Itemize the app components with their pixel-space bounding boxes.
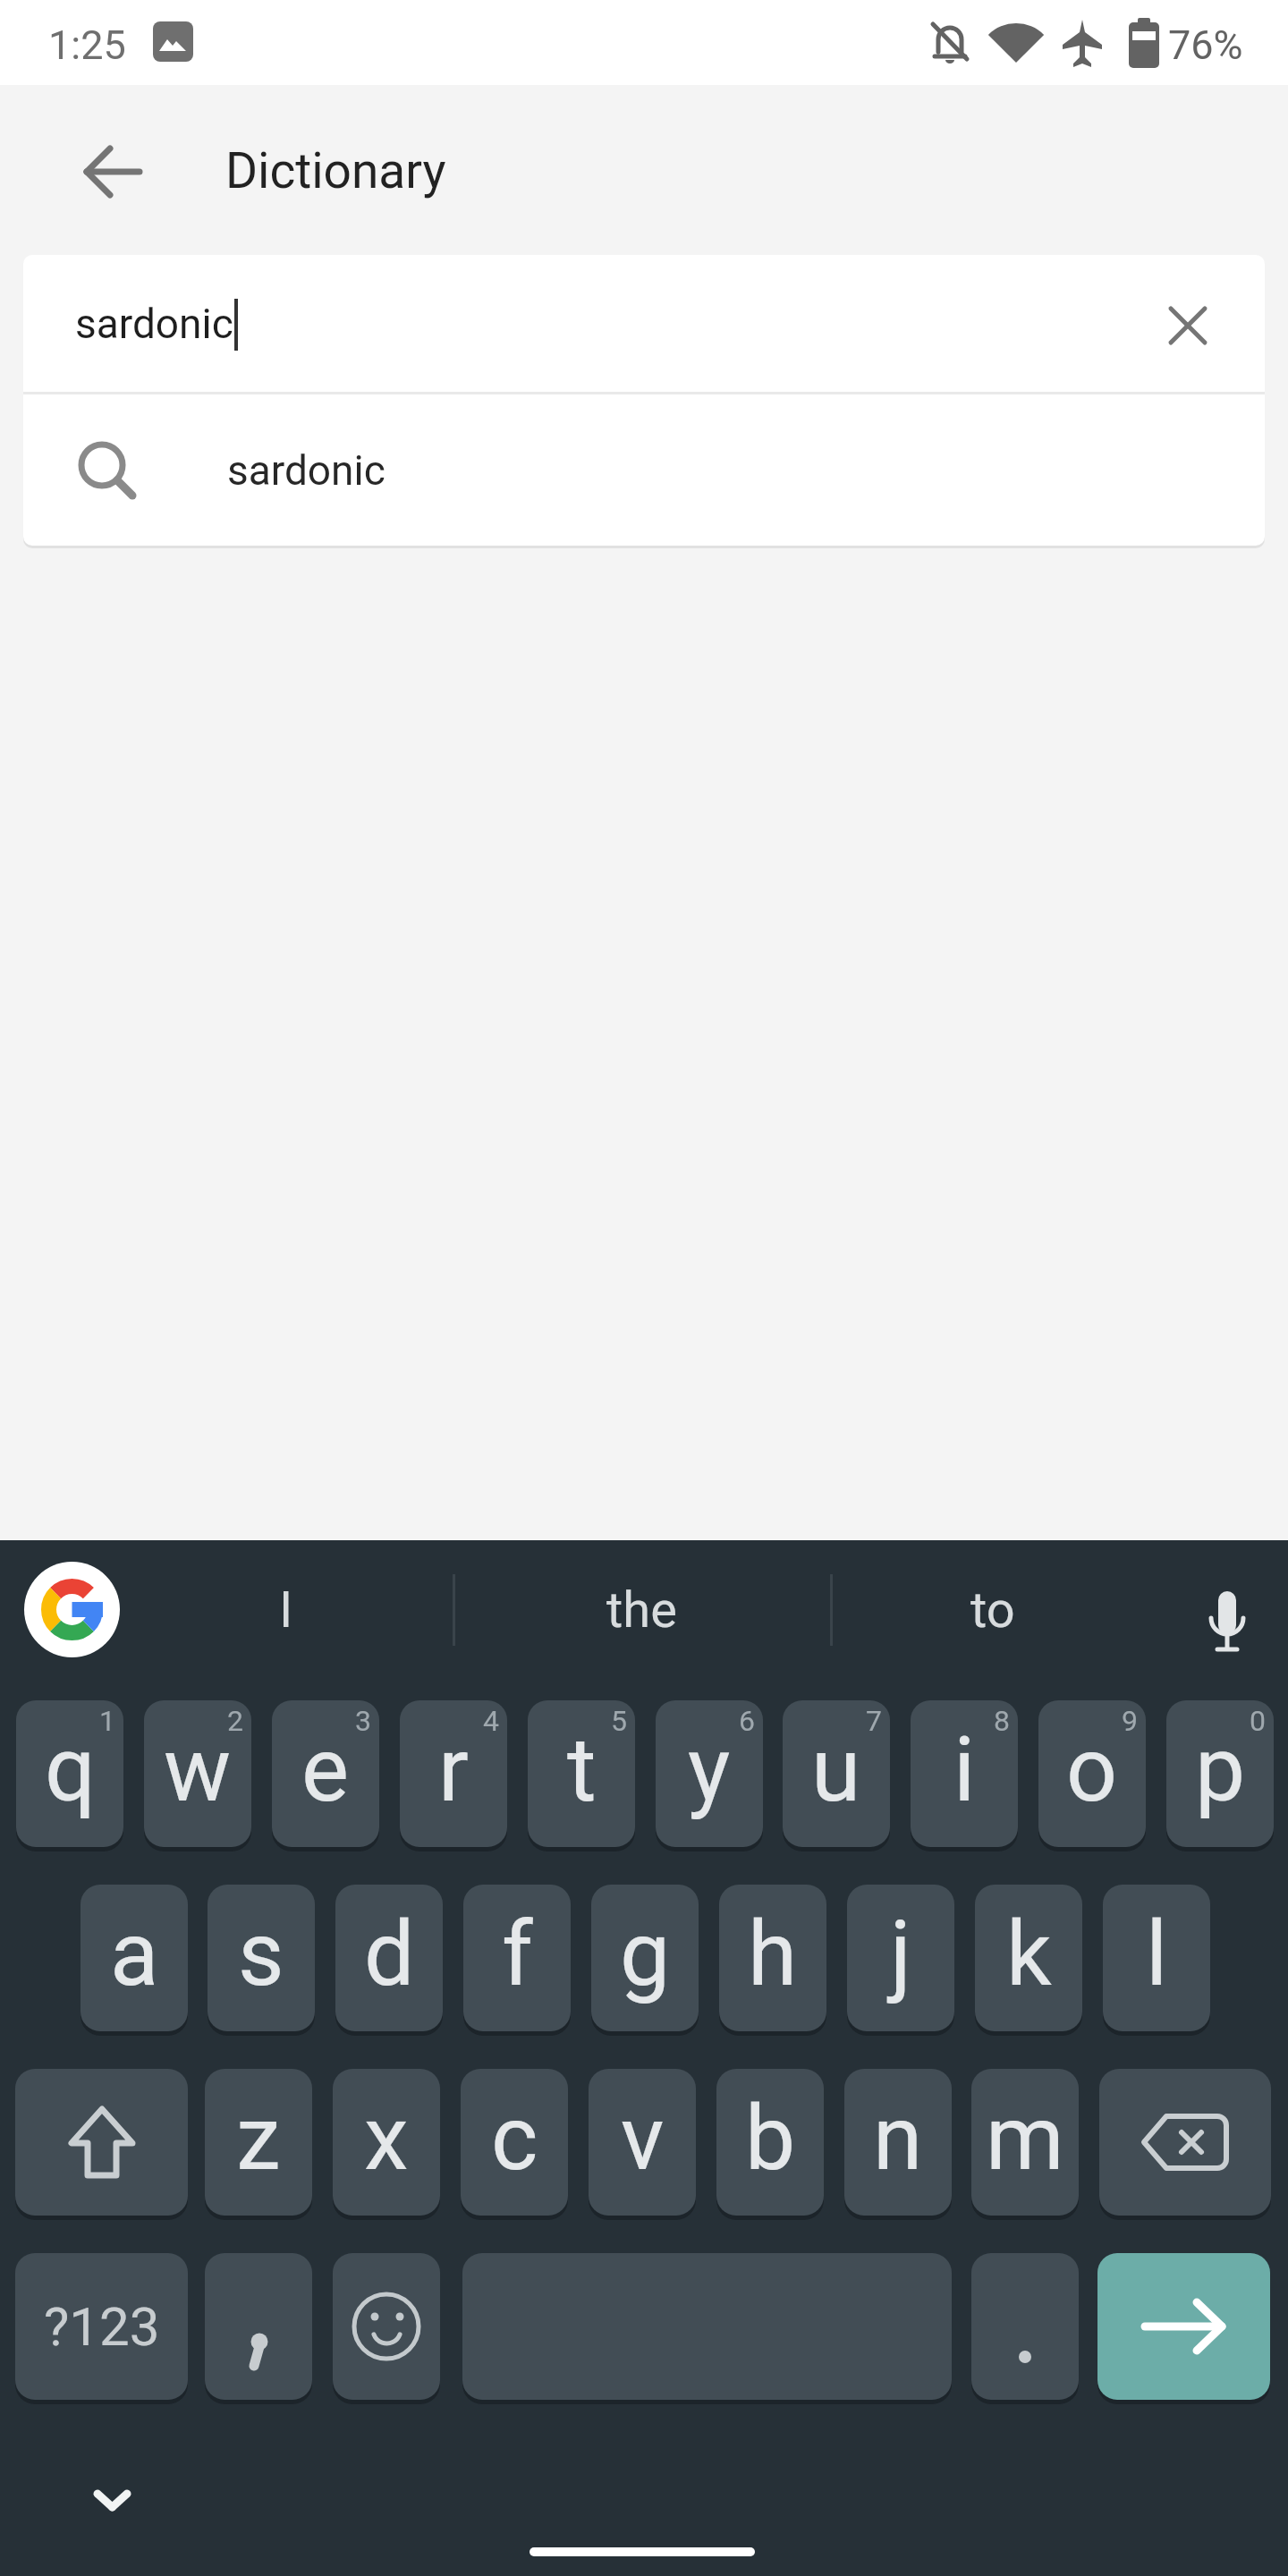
staticText: o	[1066, 1717, 1118, 1822]
button[interactable]: r	[400, 1700, 507, 1847]
staticText: z	[236, 2086, 281, 2190]
staticText: u	[811, 1717, 861, 1822]
button[interactable]	[94, 2488, 131, 2513]
button[interactable]: q	[16, 1700, 123, 1847]
staticText: h	[748, 1902, 798, 2006]
button[interactable]: h	[719, 1885, 826, 2031]
staticText: f	[502, 1902, 533, 2006]
staticText: p	[1195, 1717, 1246, 1822]
staticText: 6	[739, 1704, 755, 1738]
button[interactable]	[333, 2253, 440, 2400]
staticText: 3	[355, 1704, 371, 1738]
staticText: d	[364, 1902, 415, 2006]
button[interactable]: c	[461, 2069, 568, 2216]
staticText: i	[953, 1717, 976, 1822]
button[interactable]: u	[783, 1700, 890, 1847]
button[interactable]	[1168, 306, 1207, 345]
staticText: e	[301, 1717, 350, 1822]
button[interactable]: m	[971, 2069, 1079, 2216]
staticText: Dictionary	[225, 142, 446, 199]
button[interactable]: x	[333, 2069, 440, 2216]
staticText: q	[45, 1717, 96, 1822]
button[interactable]	[24, 1562, 120, 1657]
staticText: 1	[99, 1704, 115, 1738]
staticText: k	[1006, 1902, 1052, 2006]
button[interactable]	[84, 143, 143, 200]
staticText: m	[986, 2086, 1064, 2190]
staticText: 8	[994, 1704, 1010, 1738]
button[interactable]: b	[716, 2069, 824, 2216]
button[interactable]: z	[205, 2069, 312, 2216]
button[interactable]	[15, 2069, 188, 2216]
staticText: 1:25	[48, 21, 126, 64]
staticText: ?123	[44, 2295, 160, 2358]
button[interactable]: l	[1103, 1885, 1210, 2031]
staticText: n	[873, 2086, 923, 2190]
button[interactable]: v	[589, 2069, 696, 2216]
staticText: y	[688, 1717, 731, 1822]
button[interactable]: k	[975, 1885, 1082, 2031]
staticText: 9	[1122, 1704, 1138, 1738]
button[interactable]: y	[656, 1700, 763, 1847]
button[interactable]: g	[591, 1885, 699, 2031]
staticText: 0	[1250, 1704, 1266, 1738]
staticText: I	[279, 1580, 293, 1640]
staticText: sardonic	[75, 300, 233, 348]
button[interactable]	[205, 2253, 312, 2400]
staticText: j	[890, 1902, 911, 2006]
staticText: r	[438, 1717, 469, 1822]
staticText: 5	[611, 1704, 627, 1738]
staticText: 76%	[1168, 21, 1243, 64]
button[interactable]: t	[528, 1700, 635, 1847]
button[interactable]: a	[80, 1885, 188, 2031]
staticText: s	[238, 1902, 284, 2006]
button[interactable]: w	[144, 1700, 251, 1847]
button[interactable]: to	[830, 1556, 1156, 1664]
button[interactable]: I	[120, 1556, 453, 1664]
button[interactable]: d	[335, 1885, 443, 2031]
button[interactable]	[23, 255, 1265, 392]
button[interactable]	[1097, 2253, 1270, 2400]
button[interactable]: s	[208, 1885, 315, 2031]
button[interactable]: j	[847, 1885, 954, 2031]
staticText: the	[606, 1580, 677, 1640]
staticText: b	[745, 2086, 796, 2190]
staticText: 4	[483, 1704, 499, 1738]
button[interactable]	[462, 2253, 952, 2400]
staticText: to	[970, 1580, 1015, 1640]
staticText: 2	[227, 1704, 243, 1738]
staticText: t	[567, 1717, 597, 1822]
staticText: w	[164, 1717, 232, 1822]
button[interactable]	[23, 394, 1265, 546]
staticText: g	[620, 1902, 671, 2006]
staticText: v	[621, 2086, 665, 2190]
button[interactable]: ?123	[15, 2253, 188, 2400]
staticText: l	[1146, 1902, 1168, 2006]
button[interactable]	[971, 2253, 1079, 2400]
button[interactable]	[1199, 1580, 1256, 1662]
button[interactable]: e	[272, 1700, 379, 1847]
staticText: sardonic	[227, 446, 386, 495]
staticText: 7	[866, 1704, 882, 1738]
button[interactable]: o	[1038, 1700, 1146, 1847]
staticText: c	[491, 2086, 538, 2190]
button[interactable]: f	[463, 1885, 571, 2031]
button[interactable]	[1099, 2069, 1271, 2216]
button[interactable]: i	[911, 1700, 1018, 1847]
staticText: x	[364, 2086, 409, 2190]
button[interactable]: p	[1166, 1700, 1274, 1847]
button[interactable]: the	[453, 1556, 830, 1664]
button[interactable]: n	[844, 2069, 952, 2216]
staticText: a	[110, 1902, 159, 2006]
